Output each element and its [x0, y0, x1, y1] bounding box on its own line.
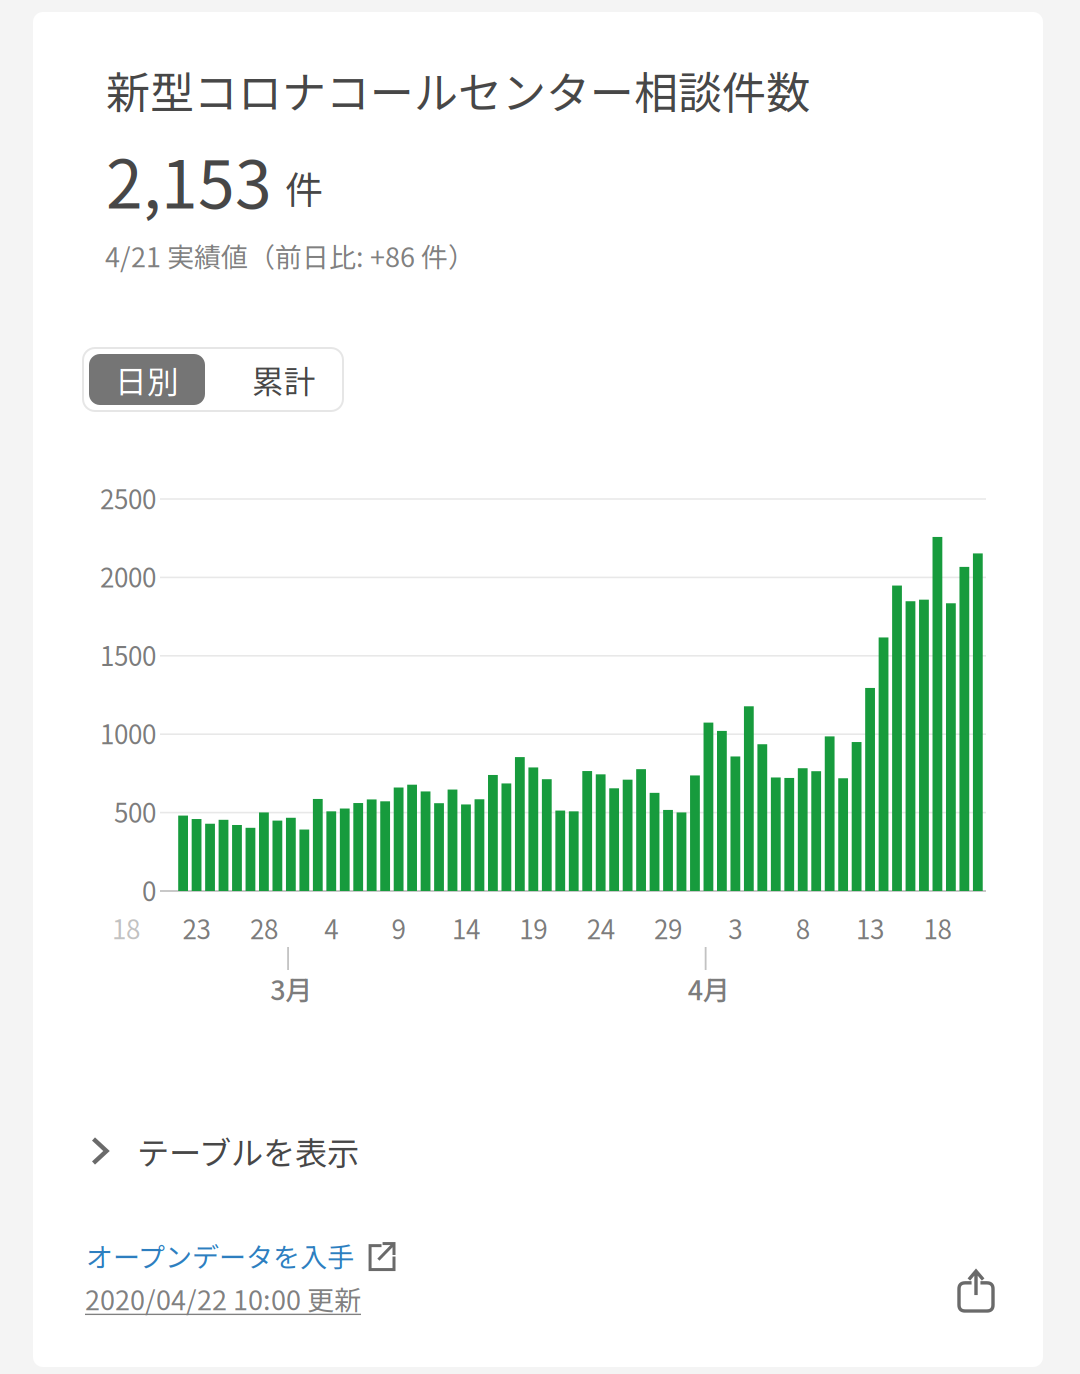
staticText: 累計 — [252, 357, 316, 402]
staticText: 件 — [285, 160, 323, 215]
staticText: 19 — [519, 909, 547, 947]
staticText: 2,153 — [106, 132, 272, 228]
button[interactable]: 共有 — [945, 1255, 1007, 1325]
staticText: 14 — [452, 909, 480, 947]
staticText: 3 — [728, 909, 742, 947]
button[interactable]: 日別 — [89, 354, 205, 405]
staticText: 24 — [587, 909, 615, 947]
staticText: 1000 — [100, 714, 156, 752]
staticText: テーブルを表示 — [137, 1128, 359, 1174]
staticText: 4月 — [688, 969, 730, 1008]
staticText: 2500 — [100, 479, 156, 517]
staticText: 4 — [324, 909, 338, 947]
staticText: オープンデータを入手 — [86, 1236, 354, 1275]
staticText: 4/21 実績値（前日比: +86 件） — [105, 236, 475, 275]
staticText: 8 — [796, 909, 810, 947]
staticText: 2020/04/22 10:00 更新 — [85, 1279, 361, 1318]
staticText: 新型コロナコールセンター相談件数 — [106, 58, 810, 122]
staticText: 500 — [114, 793, 156, 830]
button[interactable]: 累計 — [205, 354, 337, 405]
button[interactable]: オープンデータを入手 — [86, 1236, 394, 1275]
staticText: 18 — [112, 909, 140, 947]
staticText: 2000 — [100, 557, 156, 595]
staticText: 28 — [250, 909, 278, 947]
staticText: 29 — [654, 909, 682, 947]
staticText: 9 — [392, 909, 406, 947]
staticText: 23 — [183, 909, 211, 947]
staticText: 13 — [856, 909, 884, 947]
staticText: 0 — [142, 871, 156, 909]
staticText: 18 — [923, 909, 951, 947]
staticText: 日別 — [115, 357, 179, 402]
staticText: 3月 — [270, 969, 312, 1008]
button[interactable]: テーブルを表示 — [84, 1112, 984, 1190]
staticText: 1500 — [100, 636, 156, 673]
